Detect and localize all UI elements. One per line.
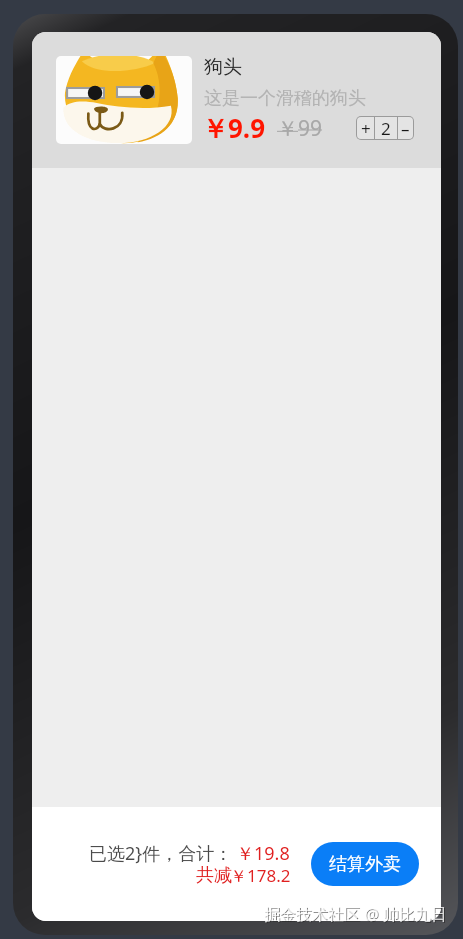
button[interactable]: 2 <box>375 117 397 139</box>
staticText: 狗头 <box>204 55 242 79</box>
staticText: 共减 <box>196 864 232 887</box>
staticText: – <box>401 117 410 139</box>
staticText: ￥9.9 <box>202 110 266 146</box>
button[interactable]: 狗头 <box>32 32 441 168</box>
staticText: ￥19.8 <box>236 841 290 866</box>
staticText: 这是一个滑稽的狗头 <box>204 87 366 110</box>
staticText: 2 <box>381 117 391 139</box>
button[interactable]: 结算外卖 <box>311 842 419 886</box>
staticText: 已选2}件，合计： <box>89 841 233 866</box>
staticText: ￥99 <box>277 114 323 143</box>
button[interactable]: – <box>398 117 413 139</box>
staticText: 掘金技术社区 @ 帅比九日 <box>264 903 447 925</box>
staticText: 掘金技术社区 @ 帅比九日 <box>265 904 448 926</box>
staticText: + <box>361 117 371 139</box>
button[interactable]: + <box>357 117 374 139</box>
staticText: ￥178.2 <box>230 864 291 887</box>
staticText: 结算外卖 <box>329 853 401 876</box>
